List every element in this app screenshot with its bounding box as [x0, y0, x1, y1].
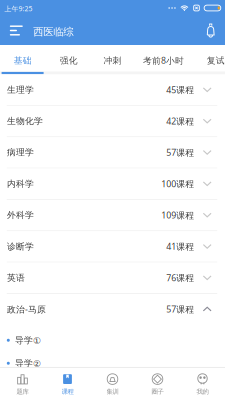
- staticText: 109课程: [161, 209, 194, 221]
- button[interactable]: 强化: [46, 45, 92, 71]
- staticText: 100课程: [161, 178, 194, 190]
- staticText: 英语: [7, 272, 25, 283]
- button[interactable]: Menu: [0, 16, 33, 45]
- button[interactable]: 课程: [45, 368, 90, 400]
- staticText: 强化: [60, 55, 78, 66]
- staticText: 考前8小时: [143, 54, 184, 66]
- staticText: 题库: [16, 388, 28, 396]
- staticText: 生理学: [7, 84, 34, 95]
- staticText: 圈子: [151, 388, 163, 396]
- button[interactable]: 英语: [0, 263, 225, 294]
- staticText: 政治-马原: [7, 303, 46, 315]
- button[interactable]: 导学①: [0, 329, 225, 352]
- button[interactable]: Notifications: [202, 16, 220, 45]
- button[interactable]: 冲刺: [92, 45, 133, 71]
- staticText: 导学①: [15, 335, 41, 346]
- button[interactable]: 基础: [0, 45, 46, 71]
- staticText: 上午9:25: [4, 4, 32, 13]
- staticText: 42课程: [166, 115, 194, 127]
- staticText: 生物化学: [7, 115, 43, 127]
- button[interactable]: 考前8小时: [133, 45, 194, 71]
- staticText: 基础: [14, 55, 32, 66]
- staticText: 41课程: [166, 240, 194, 252]
- staticText: 57课程: [166, 146, 194, 158]
- staticText: 内科学: [7, 178, 34, 189]
- staticText: 外科学: [7, 210, 34, 221]
- button[interactable]: 外科学: [0, 200, 225, 231]
- staticText: 我的: [196, 388, 208, 396]
- staticText: 复试: [207, 55, 225, 66]
- staticText: 集训: [106, 388, 118, 396]
- button[interactable]: 我的: [180, 368, 225, 400]
- staticText: 冲刺: [103, 55, 121, 66]
- button[interactable]: 圈子: [135, 368, 180, 400]
- staticText: 45课程: [166, 84, 194, 96]
- button[interactable]: 诊断学: [0, 231, 225, 262]
- button[interactable]: 题库: [0, 368, 45, 400]
- button[interactable]: 导学②: [0, 352, 225, 375]
- button[interactable]: 生物化学: [0, 106, 225, 137]
- button[interactable]: 政治-马原: [0, 294, 225, 325]
- button[interactable]: 内科学: [0, 169, 225, 200]
- button[interactable]: 生理学: [0, 74, 225, 106]
- button[interactable]: 病理学: [0, 137, 225, 168]
- button[interactable]: 复试: [194, 45, 225, 71]
- staticText: 76课程: [166, 272, 194, 284]
- staticText: 西医临综: [33, 25, 73, 38]
- staticText: 57课程: [166, 303, 194, 315]
- staticText: 导学②: [15, 358, 41, 369]
- staticText: 诊断学: [7, 241, 34, 252]
- staticText: 病理学: [7, 147, 34, 158]
- staticText: 课程: [61, 388, 73, 396]
- button[interactable]: 集训: [90, 368, 135, 400]
